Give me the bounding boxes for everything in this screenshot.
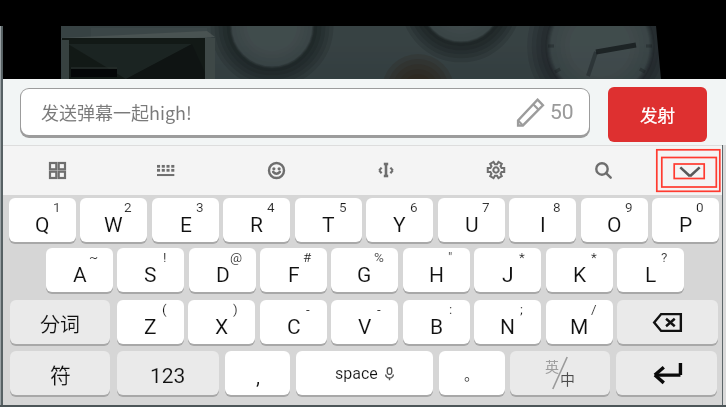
staticText: A	[73, 263, 87, 288]
staticText: space	[335, 364, 378, 383]
staticText: -	[377, 301, 381, 317]
button[interactable]: 123	[117, 351, 219, 395]
staticText: C	[287, 315, 301, 340]
button[interactable]: N	[474, 300, 541, 344]
button[interactable]: Switch English Chinese	[510, 351, 610, 395]
button[interactable]: X	[188, 300, 255, 344]
staticText: F	[288, 263, 300, 288]
button[interactable]: U	[438, 198, 505, 242]
button[interactable]: G	[331, 248, 398, 292]
button[interactable]: Panels	[30, 145, 84, 195]
staticText: 123	[150, 364, 186, 389]
staticText: 2	[124, 199, 132, 215]
staticText: T	[322, 213, 335, 238]
button[interactable]: R	[223, 198, 290, 242]
staticText: X	[215, 315, 229, 340]
button[interactable]: I	[509, 198, 576, 242]
button[interactable]: B	[403, 300, 470, 344]
button[interactable]: 分词	[10, 300, 110, 344]
staticText: N	[500, 315, 515, 340]
button[interactable]: O	[581, 198, 648, 242]
staticText: 3	[196, 199, 204, 215]
staticText: G	[357, 263, 372, 288]
button[interactable]: Enter	[616, 351, 717, 395]
button[interactable]: Q	[9, 198, 76, 242]
staticText: U	[465, 213, 479, 238]
staticText: D	[216, 263, 230, 288]
staticText: !	[163, 249, 167, 265]
staticText: 0	[696, 199, 704, 215]
staticText: 英	[545, 356, 559, 376]
staticText: L	[645, 263, 657, 288]
staticText: I	[540, 213, 546, 238]
button[interactable]: 发送弹幕一起high!	[21, 89, 589, 135]
staticText: K	[573, 263, 587, 288]
staticText: 9	[625, 199, 633, 215]
staticText: 1	[53, 199, 61, 215]
button[interactable]: C	[260, 300, 327, 344]
staticText: 中	[560, 368, 576, 390]
staticText: 发送弹幕一起high!	[41, 99, 192, 125]
staticText: 7	[482, 199, 490, 215]
staticText: 分词	[40, 309, 80, 338]
staticText: #	[303, 249, 312, 265]
button[interactable]: Y	[366, 198, 433, 242]
button[interactable]: Search	[576, 145, 630, 195]
button[interactable]: Move cursor	[359, 145, 413, 195]
staticText: M	[570, 315, 589, 340]
staticText: ?	[661, 249, 668, 265]
button[interactable]: S	[117, 248, 184, 292]
button[interactable]: P	[652, 198, 719, 242]
staticText: "	[448, 249, 453, 265]
staticText: E	[180, 213, 192, 238]
button[interactable]: T	[295, 198, 362, 242]
button[interactable]: Z	[117, 300, 184, 344]
button[interactable]: Settings	[469, 145, 523, 195]
staticText: Y	[393, 213, 406, 238]
staticText: 8	[553, 199, 561, 215]
staticText: Q	[35, 213, 50, 238]
staticText: %	[374, 249, 384, 265]
button[interactable]: E	[152, 198, 219, 242]
button[interactable]: M	[546, 300, 613, 344]
staticText: (	[162, 301, 167, 317]
button[interactable]: H	[403, 248, 470, 292]
staticText: ;	[520, 301, 523, 317]
staticText: B	[430, 315, 444, 340]
staticText: *	[591, 249, 597, 265]
staticText: S	[144, 263, 157, 288]
button[interactable]: 符	[10, 351, 110, 395]
button[interactable]: W	[80, 198, 147, 242]
staticText: @	[230, 249, 243, 265]
button[interactable]: 发射	[608, 87, 707, 142]
button[interactable]: F	[260, 248, 327, 292]
staticText: ,	[256, 365, 260, 388]
button[interactable]: Space	[296, 351, 433, 395]
staticText: ~	[89, 249, 99, 265]
staticText: H	[429, 263, 444, 288]
button[interactable]: J	[474, 248, 541, 292]
staticText: W	[104, 213, 123, 238]
staticText: 5	[339, 199, 347, 215]
button[interactable]: V	[331, 300, 398, 344]
staticText: 50	[550, 100, 574, 125]
staticText: P	[679, 213, 693, 238]
button[interactable]: 。	[439, 351, 505, 395]
button[interactable]: Keyboard	[139, 145, 193, 195]
staticText: V	[358, 315, 372, 340]
button[interactable]: K	[546, 248, 613, 292]
button[interactable]: ,	[225, 351, 290, 395]
button[interactable]: Emoji	[249, 145, 303, 195]
staticText: 。	[464, 363, 480, 385]
button[interactable]: A	[46, 248, 113, 292]
button[interactable]: Hide keyboard	[674, 164, 705, 179]
button[interactable]: D	[189, 248, 256, 292]
staticText: 6	[410, 199, 418, 215]
staticText: Z	[144, 315, 157, 340]
button[interactable]: L	[617, 248, 684, 292]
staticText: 符	[50, 359, 71, 389]
button[interactable]: Backspace	[617, 300, 718, 344]
staticText: *	[519, 249, 525, 265]
staticText: J	[502, 263, 514, 288]
staticText: 4	[267, 199, 275, 215]
